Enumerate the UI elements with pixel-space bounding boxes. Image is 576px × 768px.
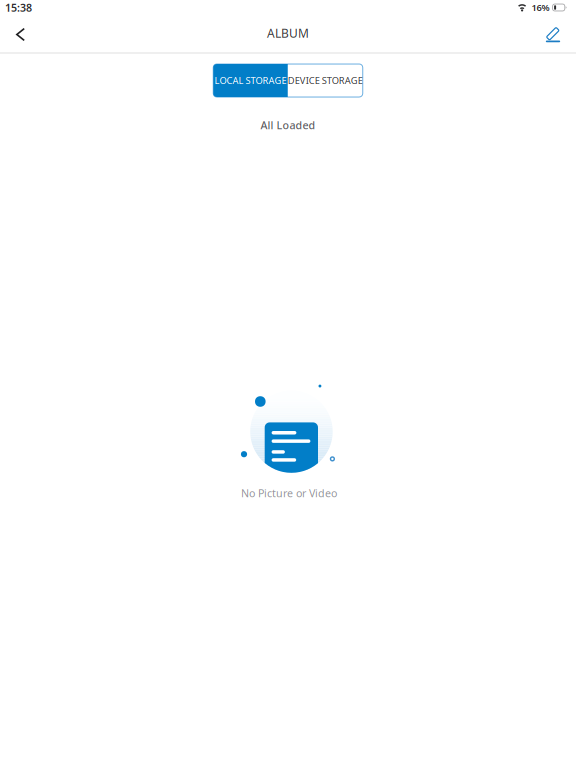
staticText: DEVICE STORAGE [288, 74, 363, 87]
staticText: No Picture or Video [241, 486, 337, 500]
button[interactable]: Back [4, 15, 38, 52]
staticText: 16% [532, 1, 550, 14]
staticText: LOCAL STORAGE [214, 74, 286, 87]
staticText: ALBUM [267, 25, 309, 41]
button[interactable]: DEVICE STORAGE [288, 64, 363, 97]
staticText: 15:38 [5, 0, 32, 15]
staticText: All Loaded [260, 118, 315, 132]
button[interactable]: Edit [536, 15, 570, 52]
button[interactable]: LOCAL STORAGE [213, 64, 288, 97]
